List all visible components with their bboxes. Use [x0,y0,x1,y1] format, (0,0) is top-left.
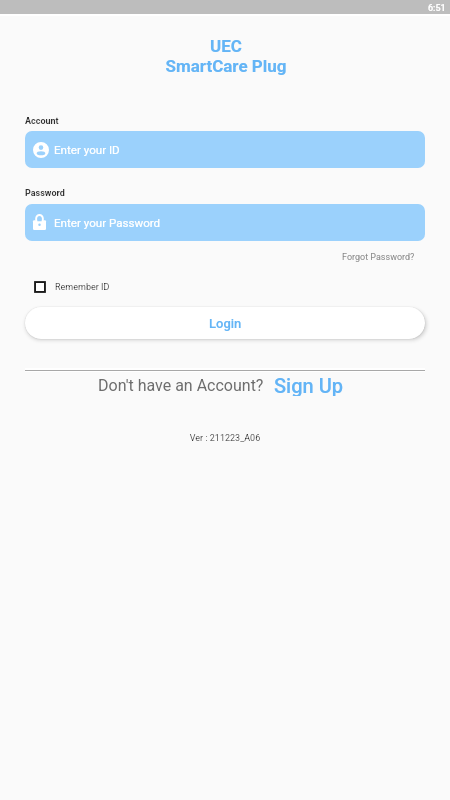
staticText: 6:51 [428,3,446,14]
button[interactable]: Sign Up [274,374,343,396]
staticText: Forgot Password? [342,252,415,263]
staticText: Password [25,188,65,199]
staticText: Login [209,316,242,331]
staticText: Enter your Password [54,216,161,230]
button[interactable]: Remember ID [31,277,110,297]
button[interactable]: Forgot Password? [335,250,415,264]
staticText: Sign Up [274,374,343,396]
button[interactable]: Login [25,307,425,339]
button[interactable]: Enter your Password [25,204,425,241]
staticText: Don't have an Account? [98,376,264,395]
staticText: Remember ID [55,282,110,293]
button[interactable]: Enter your ID [25,131,425,168]
staticText: Ver : 211223_A06 [0,433,450,444]
staticText: Account [25,116,59,127]
staticText: UEC SmartCare Plug [1,36,450,76]
staticText: Enter your ID [54,143,120,157]
